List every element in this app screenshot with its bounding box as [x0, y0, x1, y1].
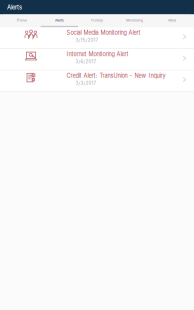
staticText: 3/3/2017 [75, 80, 95, 86]
staticText: Home [17, 18, 27, 22]
staticText: 3/15/2017 [75, 37, 97, 43]
staticText: Alerts [7, 4, 22, 11]
button[interactable]: Social Media Monitoring Alert [0, 27, 194, 49]
staticText: More [168, 18, 176, 22]
staticText: Alerts [55, 18, 64, 22]
staticText: 3/6/2017 [75, 59, 95, 64]
button[interactable]: Credit Alert: TransUnion - New Inquiry [0, 70, 194, 92]
button[interactable]: Monitoring [116, 15, 153, 27]
staticText: Credit Alert: TransUnion - New Inquiry [66, 72, 165, 79]
staticText: History [91, 18, 103, 22]
staticText: Social Media Monitoring Alert [66, 29, 140, 36]
button[interactable]: More [153, 15, 191, 27]
staticText: Monitoring [126, 18, 143, 22]
button[interactable]: Internet Monitoring Alert [0, 49, 194, 70]
button[interactable]: History [78, 15, 116, 27]
staticText: Internet Monitoring Alert [66, 51, 128, 58]
button[interactable]: Home [3, 15, 41, 27]
button[interactable]: Alerts [41, 15, 78, 27]
